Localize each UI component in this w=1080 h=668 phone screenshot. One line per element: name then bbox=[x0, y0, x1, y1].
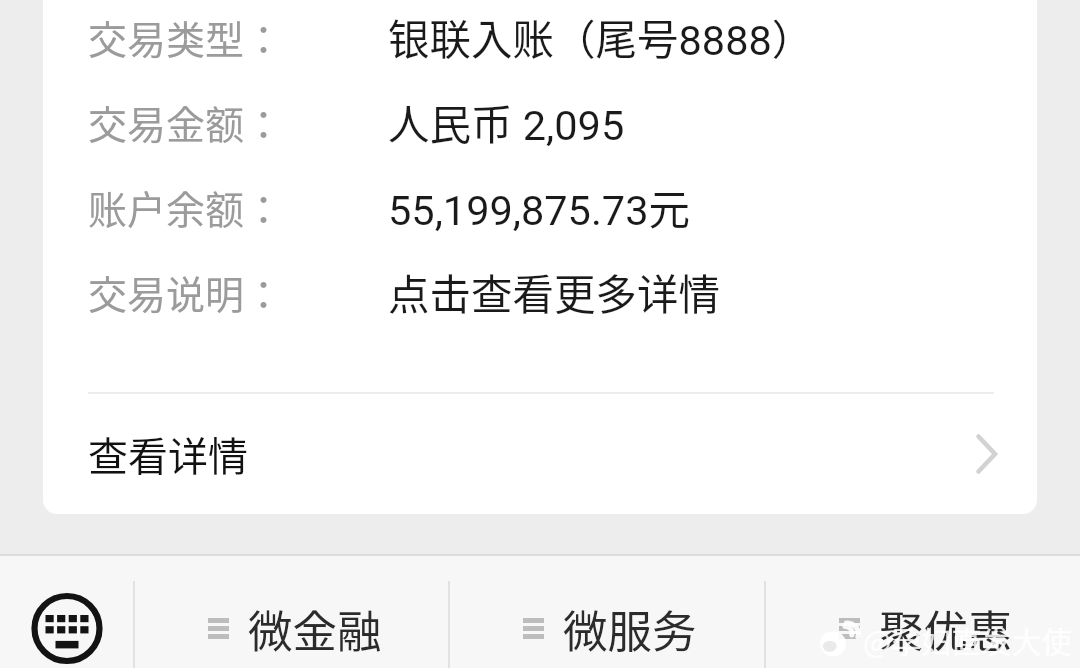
button[interactable]: 微服务 bbox=[450, 556, 764, 668]
staticText: 账户余额： bbox=[88, 179, 284, 235]
button[interactable]: 查看详情 bbox=[88, 394, 999, 514]
staticText: 交易类型： bbox=[88, 9, 284, 65]
staticText: 交易金额： bbox=[88, 94, 284, 150]
staticText: @孕妇直发大使 bbox=[863, 618, 1072, 661]
staticText: 银联入账（尾号8888） bbox=[388, 7, 814, 67]
staticText: 人民币 2,095 bbox=[388, 92, 625, 152]
staticText: 聚优惠 bbox=[879, 596, 1013, 660]
button[interactable]: Keyboard bbox=[0, 556, 133, 668]
staticText: 点击查看更多详情 bbox=[388, 262, 721, 322]
staticText: 微服务 bbox=[563, 596, 697, 660]
staticText: 交易说明： bbox=[88, 264, 284, 320]
staticText: 55,199,875.73元 bbox=[388, 177, 691, 237]
staticText: 查看详情 bbox=[88, 425, 248, 483]
button[interactable]: 微金融 bbox=[135, 556, 448, 668]
staticText: 微金融 bbox=[248, 596, 382, 660]
button[interactable]: 聚优惠 bbox=[766, 556, 1080, 668]
